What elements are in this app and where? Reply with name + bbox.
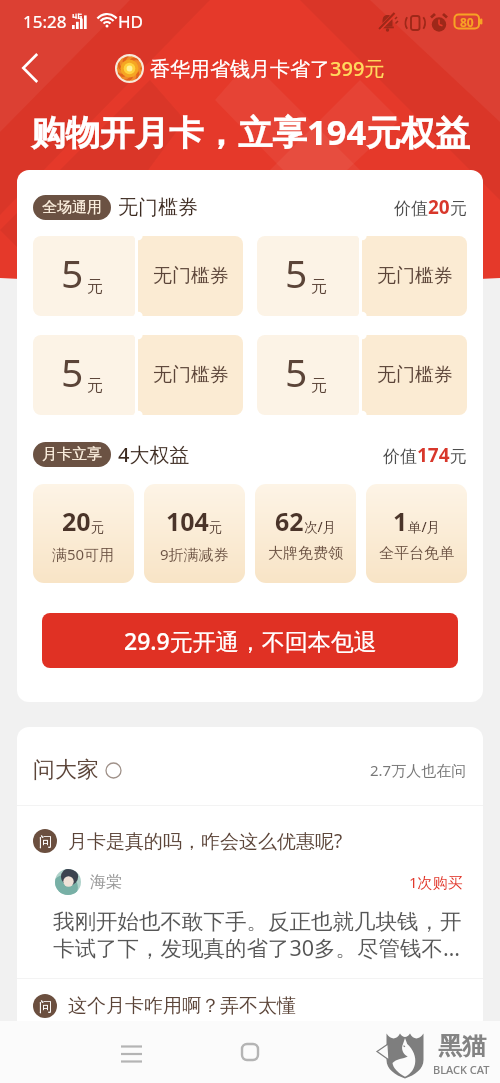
staticText: 无门槛券 [118, 195, 198, 220]
staticText: 无门槛券 [377, 264, 453, 288]
staticText: 62 [275, 504, 304, 538]
staticText: 问大家 [33, 756, 99, 784]
button[interactable]: 问 [33, 828, 467, 854]
staticText: 元 [87, 277, 103, 297]
staticText: 单/月 [408, 518, 441, 536]
staticText: 15:28 [23, 10, 67, 33]
button[interactable]: Back [8, 46, 52, 90]
staticText: 问 [39, 833, 52, 849]
staticText: 海棠 [90, 872, 122, 892]
staticText: 1 [393, 504, 408, 538]
staticText: 5 [285, 345, 308, 398]
staticText: 104 [166, 504, 209, 538]
button[interactable]: 20 [33, 484, 134, 583]
staticText: 次/月 [304, 518, 337, 536]
staticText: 29.9元开通，不回本包退 [124, 625, 377, 656]
button[interactable]: 29.9元开通，不回本包退 [42, 613, 458, 668]
staticText: 我刚开始也不敢下手。反正也就几块钱，开卡试了下，发现真的省了30多。尽管钱不… [53, 908, 475, 962]
staticText: 元 [209, 519, 223, 536]
staticText: 元 [311, 376, 327, 396]
staticText: 5 [61, 345, 84, 398]
staticText: 黑猫 [438, 1031, 486, 1061]
staticText: 无门槛券 [153, 264, 229, 288]
staticText: 购物开月卡，立享194元权益 [31, 108, 470, 155]
staticText: 价值174元 [383, 442, 467, 468]
button[interactable]: 104 [144, 484, 245, 583]
staticText: 全平台免单 [379, 544, 454, 563]
button[interactable]: 问 [33, 994, 467, 1018]
staticText: 元 [311, 277, 327, 297]
staticText: HD [118, 10, 144, 33]
staticText: 无门槛券 [153, 363, 229, 387]
staticText: 9折满减券 [160, 544, 229, 564]
button[interactable]: 62 [255, 484, 356, 583]
staticText: 元 [87, 376, 103, 396]
staticText: 2.7万人也在问 [370, 760, 467, 780]
staticText: BLACK CAT [433, 1062, 490, 1077]
button[interactable]: 5 [257, 335, 467, 415]
staticText: 月卡立享 [42, 445, 102, 464]
button[interactable]: 5 [33, 335, 243, 415]
staticText: 大牌免费领 [268, 544, 343, 563]
staticText: 5 [61, 246, 84, 299]
button[interactable]: 5 [33, 236, 243, 316]
staticText: 这个月卡咋用啊？弄不太懂 [68, 994, 296, 1018]
button[interactable]: 5 [257, 236, 467, 316]
staticText: 满50可用 [52, 544, 115, 564]
staticText: 月卡是真的吗，咋会这么优惠呢? [68, 828, 343, 854]
staticText: 问 [39, 998, 52, 1014]
staticText: 4大权益 [118, 441, 190, 468]
staticText: 全场通用 [42, 198, 102, 217]
button[interactable]: 1 [366, 484, 467, 583]
staticText: 1次购买 [409, 872, 463, 892]
button[interactable]: Home [225, 1027, 275, 1077]
staticText: 20 [62, 504, 91, 538]
staticText: 香华用省钱月卡省了399元 [150, 55, 385, 82]
staticText: 元 [91, 519, 105, 536]
staticText: 5 [285, 246, 308, 299]
staticText: 价值20元 [394, 194, 467, 220]
staticText: 无门槛券 [377, 363, 453, 387]
button[interactable]: Recent apps [106, 1027, 156, 1077]
staticText: 80 [460, 14, 474, 30]
